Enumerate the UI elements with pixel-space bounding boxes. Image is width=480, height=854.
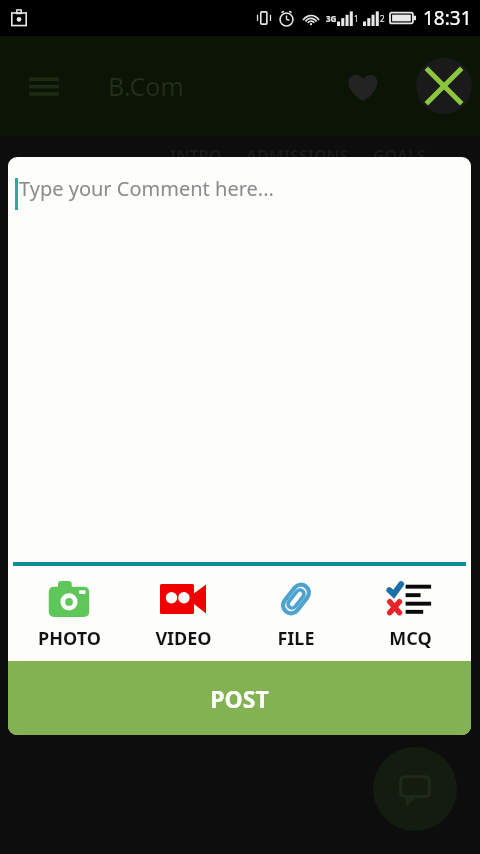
staticText: 2 (380, 13, 385, 24)
staticText: INTRO (170, 145, 222, 167)
button[interactable]: PHOTO (17, 572, 121, 655)
staticText: 18:31 (423, 5, 472, 31)
button[interactable]: Comment (373, 747, 457, 831)
button[interactable]: MCQ (358, 572, 462, 655)
button[interactable]: Close (416, 58, 472, 114)
button[interactable]: POST (8, 661, 471, 735)
staticText: GOALS (373, 145, 426, 167)
staticText: B.Com (108, 69, 184, 103)
staticText: 3G (326, 13, 337, 24)
staticText: POST (210, 683, 269, 714)
button[interactable]: Favorite (340, 63, 386, 109)
staticText: PHOTO (38, 626, 101, 651)
staticText: Type your Comment here... (19, 175, 274, 202)
staticText: ADMISSIONS (246, 145, 349, 167)
button[interactable]: Menu (22, 64, 66, 108)
staticText: MCQ (389, 626, 432, 651)
button[interactable]: FILE (244, 572, 348, 655)
staticText: 1 (354, 13, 359, 24)
staticText: FILE (277, 626, 315, 651)
staticText: VIDEO (155, 626, 212, 651)
button[interactable]: VIDEO (131, 572, 235, 655)
